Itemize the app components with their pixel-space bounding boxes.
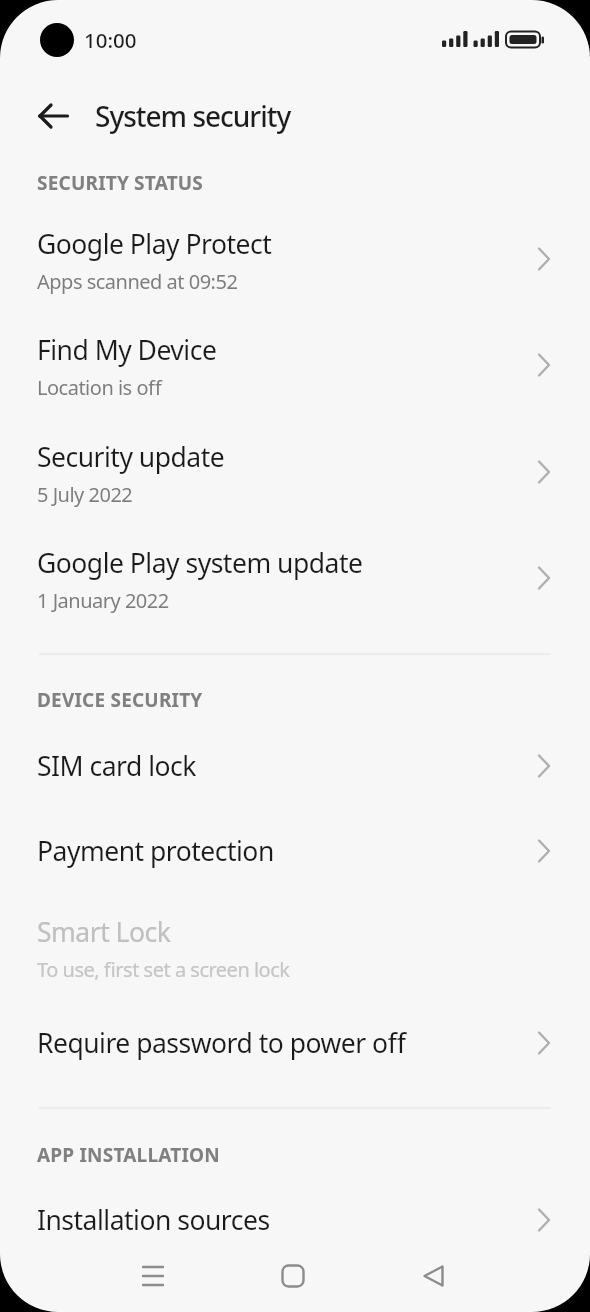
button[interactable]: Require password to power off [0, 1003, 590, 1083]
button[interactable]: Installation sources [0, 1180, 590, 1260]
staticText: Installation sources [37, 1202, 270, 1238]
staticText: Smart Lock [37, 914, 171, 950]
staticText: Google Play system update [37, 545, 363, 581]
button[interactable]: SIM card lock [0, 726, 590, 806]
staticText: 10:00 [84, 26, 137, 54]
staticText: SIM card lock [37, 748, 196, 784]
button[interactable]: Smart Lock [0, 900, 590, 1000]
staticText: System security [95, 97, 291, 135]
staticText: Require password to power off [37, 1025, 406, 1061]
staticText: Payment protection [37, 833, 274, 869]
button[interactable] [384, 1241, 484, 1311]
button[interactable]: Google Play system update [0, 531, 590, 631]
button[interactable]: Google Play Protect [0, 212, 590, 312]
button[interactable]: Find My Device [0, 318, 590, 418]
staticText: Google Play Protect [37, 226, 272, 262]
staticText: 1 January 2022 [37, 587, 169, 614]
staticText: DEVICE SECURITY [37, 687, 203, 713]
button[interactable]: Security update [0, 425, 590, 525]
staticText: Apps scanned at 09:52 [37, 268, 238, 295]
staticText: Security update [37, 439, 225, 475]
staticText: APP INSTALLATION [37, 1142, 220, 1168]
staticText: 5 July 2022 [37, 481, 133, 508]
button[interactable] [103, 1241, 203, 1311]
staticText: SECURITY STATUS [37, 170, 204, 196]
staticText: Find My Device [37, 332, 217, 368]
button[interactable]: Payment protection [0, 811, 590, 891]
staticText: To use, first set a screen lock [37, 956, 290, 983]
button[interactable] [243, 1241, 343, 1311]
staticText: Location is off [37, 374, 162, 401]
